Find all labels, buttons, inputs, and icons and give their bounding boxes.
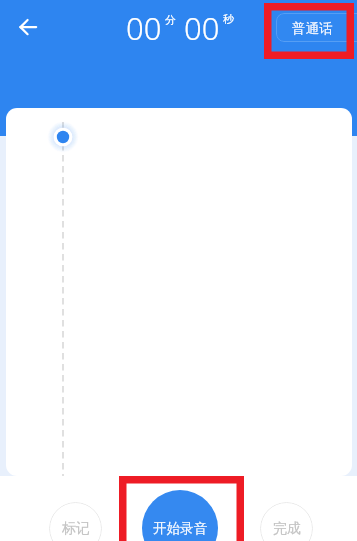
staticText: 分 [165,13,176,27]
button[interactable]: 普通话 [276,13,357,42]
button[interactable]: Back [12,12,44,44]
staticText: 普通话 [292,20,333,37]
staticText: 00 [184,7,220,49]
staticText: 开始录音 [153,520,207,537]
button[interactable]: 完成 [260,502,313,541]
staticText: 00 [126,7,162,49]
staticText: 完成 [273,520,301,538]
button[interactable]: 开始录音 [142,490,218,541]
staticText: 秒 [223,12,234,26]
button[interactable]: 标记 [49,502,102,541]
staticText: 标记 [62,520,90,538]
